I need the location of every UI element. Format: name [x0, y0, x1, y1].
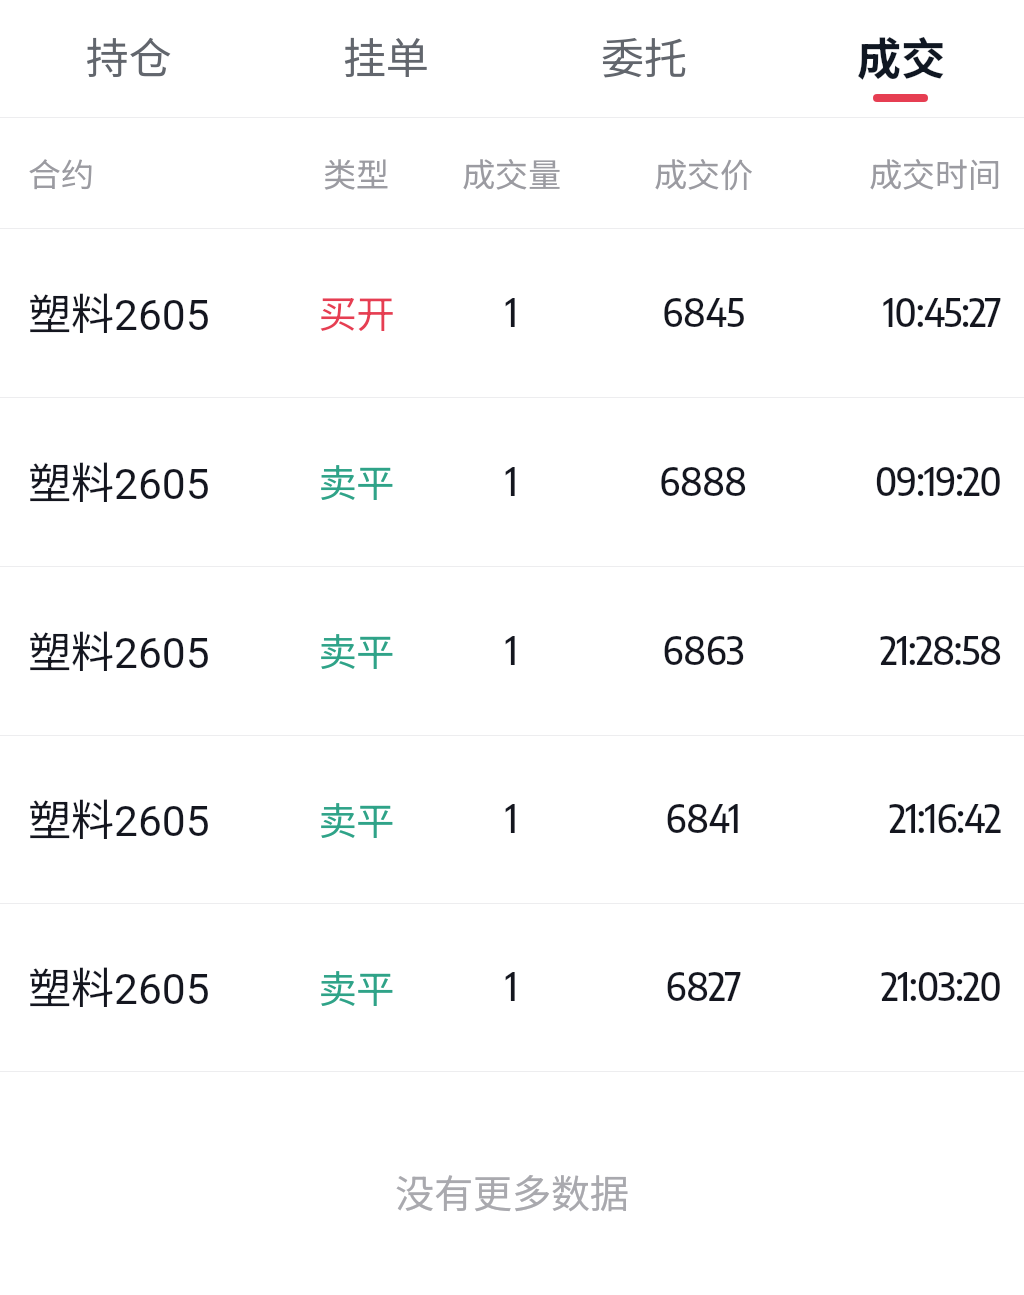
staticText: 成交量: [462, 149, 561, 197]
staticText: 09:19:20: [875, 455, 1001, 505]
staticText: 21:28:58: [880, 624, 1001, 674]
staticText: 10:45:27: [883, 286, 1001, 336]
staticText: 塑料2605: [28, 280, 210, 342]
staticText: 类型: [323, 149, 389, 197]
staticText: 成交: [857, 24, 945, 88]
staticText: 6888: [659, 455, 747, 505]
staticText: 1: [505, 960, 518, 1010]
staticText: 6827: [665, 960, 742, 1010]
staticText: 合约: [28, 149, 94, 197]
staticText: 1: [505, 286, 518, 336]
button[interactable]: 塑料2605: [0, 398, 1024, 567]
staticText: 塑料2605: [28, 618, 210, 680]
staticText: 塑料2605: [28, 954, 210, 1016]
staticText: 持仓: [86, 24, 172, 86]
other: Selected tab indicator: [873, 94, 928, 102]
staticText: 没有更多数据: [395, 1163, 630, 1219]
staticText: 6863: [662, 624, 745, 674]
staticText: 成交价: [654, 149, 753, 197]
staticText: 21:03:20: [881, 960, 1001, 1010]
staticText: 6841: [665, 792, 741, 842]
staticText: 买开: [318, 284, 395, 339]
staticText: 成交时间: [869, 149, 1001, 197]
button[interactable]: 塑料2605: [0, 229, 1024, 398]
button[interactable]: 委托: [515, 0, 772, 118]
staticText: 1: [505, 624, 518, 674]
staticText: 1: [505, 792, 518, 842]
staticText: 卖平: [318, 622, 395, 677]
staticText: 挂单: [343, 24, 429, 86]
button[interactable]: 成交: [772, 0, 1024, 118]
staticText: 卖平: [318, 453, 395, 508]
button[interactable]: 挂单: [257, 0, 514, 118]
staticText: 6845: [662, 286, 745, 336]
staticText: 塑料2605: [28, 786, 210, 848]
button[interactable]: 塑料2605: [0, 904, 1024, 1072]
button[interactable]: 塑料2605: [0, 567, 1024, 736]
staticText: 塑料2605: [28, 449, 210, 511]
button[interactable]: 塑料2605: [0, 736, 1024, 904]
staticText: 卖平: [318, 959, 395, 1014]
button[interactable]: 持仓: [0, 0, 257, 118]
staticText: 21:16:42: [889, 792, 1001, 842]
staticText: 1: [505, 455, 518, 505]
staticText: 卖平: [318, 791, 395, 846]
staticText: 委托: [601, 24, 687, 86]
